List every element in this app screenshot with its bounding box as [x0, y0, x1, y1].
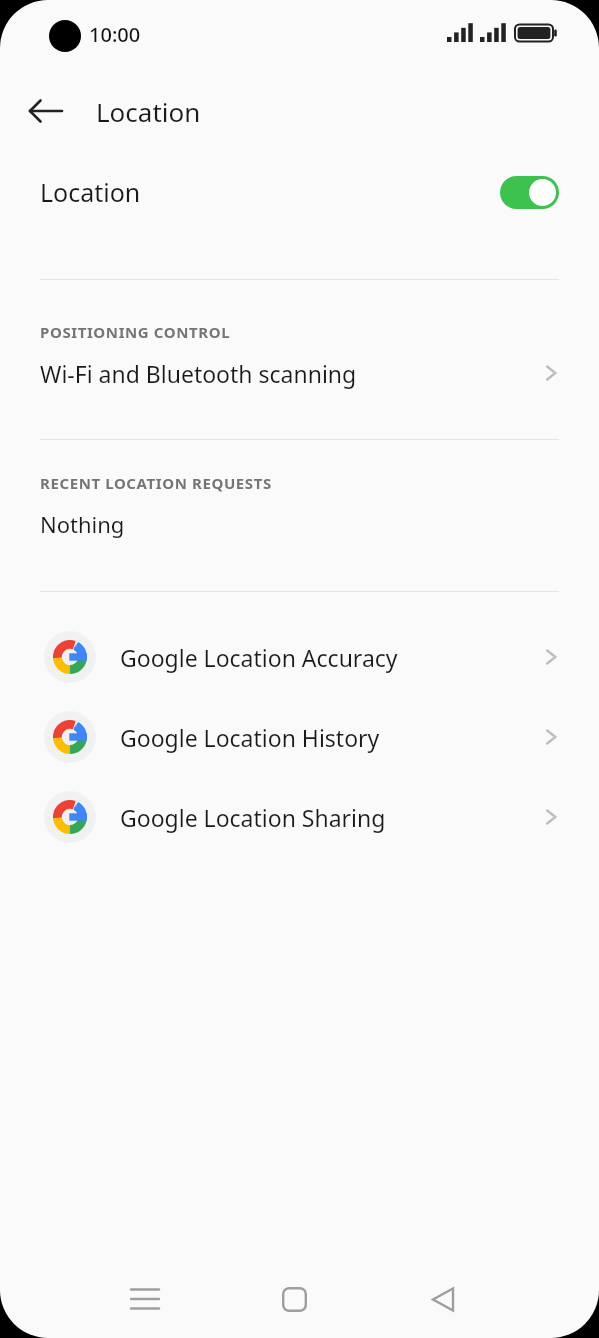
staticText: Wi-Fi and Bluetooth scanning: [40, 358, 357, 389]
button[interactable]: Wi-Fi and Bluetooth scanning: [0, 342, 599, 404]
staticText: Nothing: [40, 509, 125, 539]
staticText: RECENT LOCATION REQUESTS: [40, 473, 272, 493]
staticText: POSITIONING CONTROL: [40, 322, 231, 342]
staticText: Google Location Sharing: [120, 802, 386, 833]
button[interactable]: Back: [22, 87, 70, 135]
staticText: Google Location Accuracy: [120, 642, 398, 673]
button[interactable]: Home: [246, 1260, 342, 1338]
button[interactable]: Google Location Sharing: [0, 777, 599, 857]
button[interactable]: Recent apps: [97, 1260, 193, 1338]
button[interactable]: Back: [395, 1260, 491, 1338]
button[interactable]: Google Location History: [0, 697, 599, 777]
button[interactable]: Google Location Accuracy: [0, 617, 599, 697]
staticText: Location: [96, 94, 201, 129]
staticText: Google Location History: [120, 722, 380, 753]
staticText: Location: [40, 175, 141, 209]
button[interactable]: Location toggle, on: [500, 176, 559, 209]
button[interactable]: Location: [0, 152, 599, 232]
staticText: 10:00: [89, 21, 141, 48]
